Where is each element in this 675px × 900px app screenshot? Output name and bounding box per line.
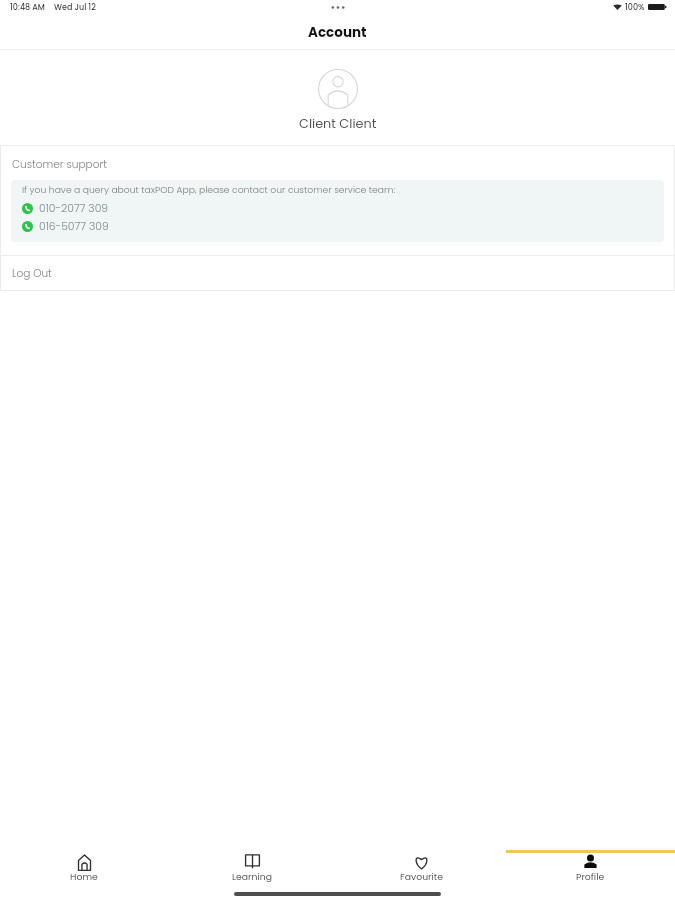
staticText: Account	[308, 23, 367, 42]
button[interactable]: Learning	[168, 853, 337, 886]
other: Profile	[583, 854, 598, 871]
other: Learning	[245, 854, 260, 871]
button[interactable]: 010-2077 309	[22, 201, 109, 216]
staticText: Customer support	[12, 157, 107, 172]
staticText: Client Client	[299, 115, 377, 133]
button[interactable]: Profile picture	[318, 69, 358, 109]
staticText: Home	[70, 870, 98, 883]
staticText: 016-5077 309	[39, 219, 109, 234]
staticText: If you have a query about taxPOD App, pl…	[22, 183, 396, 196]
staticText: 010-2077 309	[39, 201, 109, 216]
staticText: Profile	[576, 870, 605, 883]
button[interactable]: 016-5077 309	[22, 219, 109, 234]
other: Home	[77, 854, 92, 871]
staticText: Wed Jul 12	[54, 2, 96, 13]
button[interactable]: Log Out	[0, 256, 675, 290]
staticText: 100%	[625, 2, 645, 13]
button[interactable]: Home	[0, 853, 168, 886]
staticText: Favourite	[400, 870, 443, 883]
staticText: 10:48 AM	[10, 2, 45, 13]
button[interactable]: Favourite	[337, 853, 506, 886]
button[interactable]: Profile	[506, 853, 675, 886]
staticText: Learning	[232, 870, 273, 883]
other: Favourite	[414, 854, 429, 871]
staticText: Log Out	[12, 266, 52, 281]
